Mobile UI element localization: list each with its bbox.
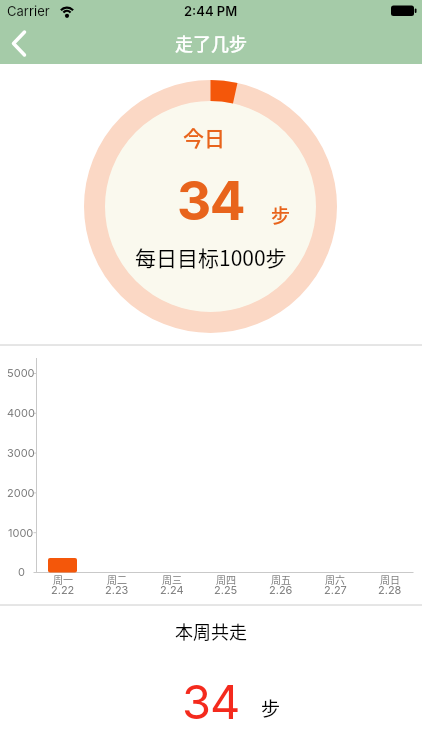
staticText: 本周共走 xyxy=(175,618,247,644)
staticText: 步 xyxy=(271,201,291,227)
staticText: 周一 xyxy=(53,572,73,586)
staticText: 2.22 xyxy=(51,583,75,596)
staticText: 2.25 xyxy=(214,583,238,596)
staticText: 34 xyxy=(177,169,245,229)
staticText: 2.26 xyxy=(269,583,293,596)
staticText: 2.28 xyxy=(378,583,402,596)
button[interactable] xyxy=(0,24,44,64)
staticText: 2.24 xyxy=(160,583,184,596)
staticText: 2.27 xyxy=(324,583,347,596)
staticText: 1000 xyxy=(8,526,34,539)
staticText: 3000 xyxy=(7,446,35,459)
staticText: 周二 xyxy=(107,572,127,586)
staticText: 周日 xyxy=(380,572,400,586)
staticText: 2000 xyxy=(7,486,35,499)
staticText: 周三 xyxy=(162,572,182,586)
staticText: 周四 xyxy=(216,572,236,586)
staticText: 2.23 xyxy=(105,583,129,596)
staticText: 34 xyxy=(182,673,240,729)
staticText: 今日 xyxy=(183,122,225,152)
staticText: 每日目标1000步 xyxy=(135,242,287,272)
staticText: Carrier xyxy=(7,3,50,19)
staticText: 周五 xyxy=(271,572,291,586)
staticText: 2:44 PM xyxy=(184,3,238,19)
staticText: 4000 xyxy=(7,406,35,419)
staticText: 0 xyxy=(18,565,25,578)
staticText: 周六 xyxy=(325,572,345,586)
staticText: 5000 xyxy=(7,366,35,379)
staticText: 步 xyxy=(261,694,281,721)
staticText: 走了几步 xyxy=(175,30,247,56)
